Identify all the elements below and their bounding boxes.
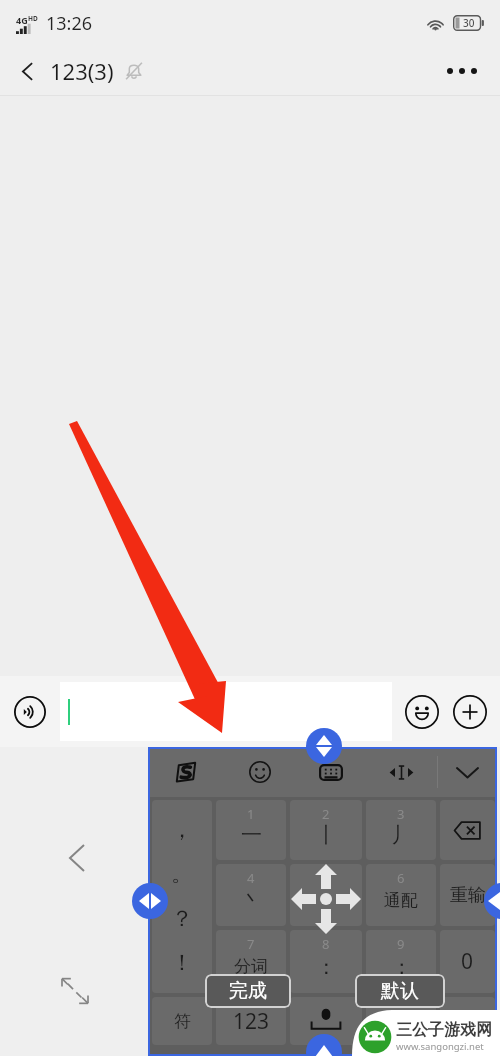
button[interactable] [366, 997, 436, 1045]
button[interactable]: Emoji [224, 747, 295, 797]
staticText: 一 [241, 822, 262, 848]
button[interactable]: 4 [216, 864, 286, 926]
button[interactable] [440, 997, 495, 1045]
button[interactable]: 1 [216, 800, 286, 860]
staticText: 丨 [316, 822, 337, 848]
staticText: 7 [247, 935, 255, 953]
staticText: 完成 [229, 979, 267, 1003]
button[interactable]: 9 [366, 930, 436, 993]
button[interactable]: Backspace [440, 800, 495, 860]
staticText: ， [171, 816, 193, 844]
button[interactable]: Voice input [290, 997, 362, 1045]
button[interactable]: 123 [216, 997, 286, 1045]
staticText: ？ [171, 905, 193, 933]
button[interactable]: Sogou input method [148, 747, 224, 797]
staticText: 9 [397, 935, 405, 953]
staticText: 分词 [234, 956, 268, 977]
staticText: 3 [397, 805, 405, 823]
button[interactable]: Keyboard layout [295, 747, 366, 797]
button[interactable]: Notifications muted [121, 58, 147, 84]
staticText: 三公子游戏网 [396, 1020, 492, 1040]
button[interactable]: 2 [290, 800, 362, 860]
button[interactable]: Move cursor [366, 747, 437, 797]
staticText: HD [28, 14, 38, 23]
button[interactable]: More options [438, 47, 486, 95]
button[interactable]: 符 [152, 997, 212, 1045]
button[interactable]: 默认 [355, 974, 445, 1008]
button[interactable]: 重输 [440, 864, 495, 926]
button[interactable]: Back [6, 50, 48, 92]
button[interactable]: Hide keyboard [438, 747, 497, 797]
staticText: 8 [322, 935, 330, 953]
staticText: www.sangongzi.net [396, 1040, 484, 1053]
button[interactable]: 0 [440, 930, 495, 993]
staticText: 2 [322, 805, 330, 823]
button[interactable] [60, 682, 392, 741]
staticText: ！ [171, 949, 193, 977]
staticText: 符 [174, 1011, 191, 1032]
button[interactable]: Voice input [14, 696, 46, 728]
staticText: 4 [247, 869, 255, 887]
staticText: 0 [461, 947, 474, 976]
button[interactable]: Move cursor [290, 864, 362, 926]
staticText: 1 [247, 805, 255, 823]
staticText: 默认 [381, 979, 419, 1003]
button[interactable]: 7 [216, 930, 286, 993]
staticText: ： [316, 954, 337, 980]
button[interactable]: 6 [366, 864, 436, 926]
staticText: 30 [463, 16, 475, 30]
staticText: 丶 [241, 887, 262, 913]
staticText: 。 [171, 860, 193, 888]
button[interactable]: 3 [366, 800, 436, 860]
staticText: 4G [16, 14, 28, 26]
button[interactable]: Add [448, 690, 492, 734]
staticText: 重输 [450, 884, 486, 907]
staticText: ； [391, 954, 412, 980]
staticText: 通配 [384, 890, 418, 911]
button[interactable]: ， [152, 800, 212, 993]
staticText: 13:26 [46, 11, 93, 36]
button[interactable]: 8 [290, 930, 362, 993]
staticText: 6 [397, 869, 405, 887]
staticText: 123 [233, 1007, 270, 1036]
staticText: 123(3) [50, 56, 114, 86]
button[interactable]: Emoji [400, 690, 444, 734]
staticText: 丿 [391, 822, 412, 848]
button[interactable]: 完成 [205, 974, 291, 1008]
